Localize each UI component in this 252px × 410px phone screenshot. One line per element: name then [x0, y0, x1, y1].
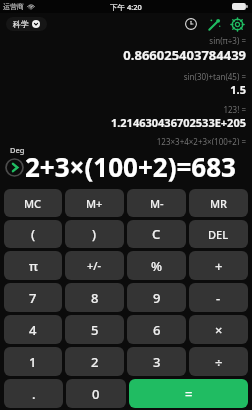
staticText: 2 — [91, 353, 99, 371]
button[interactable]: ( — [4, 220, 62, 248]
button[interactable]: × — [189, 315, 248, 344]
staticText: 1.5 — [230, 82, 246, 97]
staticText: ÷ — [215, 353, 223, 371]
button[interactable]: 8 — [65, 283, 124, 312]
button[interactable]: + — [189, 251, 248, 280]
staticText: ) — [92, 225, 97, 243]
staticText: + — [215, 257, 223, 275]
staticText: sin(30)+tan(45) = — [183, 71, 246, 82]
staticText: π — [29, 257, 38, 275]
staticText: 6 — [153, 321, 161, 339]
staticText: % — [151, 257, 163, 275]
button[interactable]: M- — [127, 189, 186, 217]
button[interactable]: 科学 — [6, 17, 47, 31]
staticText: sin(π÷3) = — [209, 35, 246, 46]
staticText: 123×3+4×2+3×(100+2) = — [156, 136, 246, 145]
staticText: . — [32, 385, 36, 403]
staticText: 9 — [153, 289, 161, 307]
button[interactable]: MC — [4, 189, 62, 217]
staticText: × — [215, 321, 223, 339]
staticText: DEL — [208, 227, 229, 242]
button[interactable]: History — [181, 14, 201, 34]
staticText: 4 — [29, 321, 37, 339]
staticText: 1.214630436702533E+205 — [110, 115, 246, 130]
staticText: 科学 — [13, 19, 29, 29]
button[interactable]: 4 — [4, 315, 62, 344]
button[interactable]: +/- — [65, 251, 124, 280]
staticText: ( — [31, 225, 36, 243]
staticText: 5 — [91, 321, 99, 339]
button[interactable]: 3 — [127, 347, 186, 376]
staticText: Deg — [10, 145, 25, 155]
button[interactable]: 0 — [66, 379, 126, 408]
button[interactable]: Settings — [227, 14, 247, 34]
staticText: 运营商 — [3, 2, 24, 11]
button[interactable]: DEL — [189, 220, 248, 248]
button[interactable]: Smart convert — [204, 14, 224, 34]
button[interactable]: . — [4, 379, 63, 408]
button[interactable]: M+ — [65, 189, 124, 217]
staticText: 1 — [29, 353, 37, 371]
button[interactable]: Evaluate — [3, 156, 25, 178]
button[interactable]: 6 — [127, 315, 186, 344]
staticText: 下午 4:20 — [110, 2, 142, 12]
button[interactable]: - — [189, 283, 248, 312]
staticText: 7 — [29, 289, 37, 307]
button[interactable]: = — [129, 379, 248, 408]
button[interactable]: ) — [65, 220, 124, 248]
button[interactable]: 1 — [4, 347, 62, 376]
staticText: - — [216, 289, 221, 307]
staticText: MC — [24, 196, 42, 211]
button[interactable]: 5 — [65, 315, 124, 344]
button[interactable]: π — [4, 251, 62, 280]
staticText: 123! = — [223, 104, 246, 115]
staticText: M- — [150, 196, 164, 211]
staticText: 2+3×(100+2)=683 — [25, 149, 236, 184]
button[interactable]: 2 — [65, 347, 124, 376]
staticText: 0.866025403784439 — [123, 46, 246, 64]
staticText: C — [152, 225, 161, 243]
staticText: M+ — [86, 196, 103, 211]
staticText: 0 — [92, 385, 100, 403]
staticText: MR — [210, 196, 228, 211]
staticText: = — [185, 385, 193, 403]
button[interactable]: C — [127, 220, 186, 248]
button[interactable]: 9 — [127, 283, 186, 312]
button[interactable]: % — [127, 251, 186, 280]
staticText: 3 — [153, 353, 161, 371]
button[interactable]: 7 — [4, 283, 62, 312]
button[interactable]: MR — [189, 189, 248, 217]
staticText: +/- — [87, 258, 102, 273]
staticText: 8 — [91, 289, 99, 307]
button[interactable]: ÷ — [189, 347, 248, 376]
